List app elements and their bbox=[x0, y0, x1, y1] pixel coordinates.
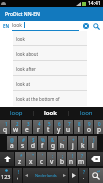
button[interactable]: d bbox=[28, 136, 37, 150]
button[interactable]: . bbox=[79, 168, 88, 183]
button[interactable]: loon bbox=[69, 107, 103, 119]
button[interactable]: look about bbox=[13, 46, 87, 61]
button[interactable]: look after bbox=[13, 61, 87, 76]
button[interactable]: n bbox=[67, 152, 76, 166]
button[interactable]: i bbox=[74, 120, 83, 134]
button[interactable]: Next bbox=[69, 168, 78, 183]
staticText: look at the bottom of bbox=[16, 96, 60, 102]
staticText: ) bbox=[93, 137, 95, 143]
staticText: 9 bbox=[88, 121, 91, 127]
staticText: f bbox=[41, 141, 44, 150]
staticText: q bbox=[3, 125, 7, 134]
button[interactable]: e bbox=[22, 120, 32, 134]
button[interactable]: look bbox=[13, 31, 87, 46]
button[interactable]: w bbox=[11, 120, 21, 134]
button[interactable]: o bbox=[84, 120, 93, 134]
other: Search bbox=[89, 168, 103, 183]
button[interactable]: Nederlands bbox=[23, 168, 68, 183]
button[interactable]: c bbox=[37, 152, 46, 166]
staticText: & bbox=[51, 137, 55, 143]
staticText: look about bbox=[16, 51, 39, 57]
staticText: a bbox=[10, 141, 14, 150]
staticText: z bbox=[18, 157, 22, 166]
staticText: ! bbox=[18, 169, 20, 175]
staticText: 2 bbox=[16, 121, 19, 127]
staticText: n bbox=[69, 157, 74, 166]
staticText: 6 bbox=[58, 121, 61, 127]
staticText: 5 bbox=[48, 121, 51, 127]
other: Shift bbox=[0, 152, 14, 166]
staticText: % bbox=[41, 137, 45, 143]
staticText: : bbox=[52, 153, 54, 159]
button[interactable]: k bbox=[78, 136, 87, 150]
staticText: k bbox=[81, 141, 85, 150]
button[interactable]: look at the bottom of bbox=[13, 91, 87, 106]
button[interactable]: Clear bbox=[81, 21, 91, 31]
button[interactable]: Shift bbox=[0, 152, 14, 166]
staticText: v bbox=[50, 157, 54, 166]
button[interactable]: v bbox=[47, 152, 56, 166]
button[interactable]: t bbox=[44, 120, 53, 134]
button[interactable]: look bbox=[34, 107, 68, 119]
staticText: w bbox=[13, 125, 19, 134]
button[interactable]: r bbox=[33, 120, 43, 134]
staticText: $ bbox=[32, 137, 35, 143]
button[interactable]: ProDict NN-EN bbox=[0, 7, 103, 21]
button[interactable]: j bbox=[68, 136, 77, 150]
staticText: look bbox=[12, 22, 23, 29]
staticText: look bbox=[16, 36, 25, 42]
staticText: look after bbox=[16, 66, 36, 72]
staticText: ; bbox=[62, 153, 64, 159]
staticText: 0 bbox=[98, 121, 101, 127]
staticText: 123 bbox=[1, 173, 11, 180]
button[interactable]: Backspace bbox=[87, 152, 103, 166]
staticText: j bbox=[72, 141, 74, 150]
button[interactable]: p bbox=[94, 120, 103, 134]
staticText: 8 bbox=[78, 121, 81, 127]
staticText: u bbox=[66, 125, 71, 134]
staticText: r bbox=[37, 125, 40, 134]
button[interactable]: x bbox=[26, 152, 36, 166]
button[interactable]: h bbox=[58, 136, 67, 150]
staticText: ( bbox=[83, 137, 85, 143]
button[interactable]: l bbox=[88, 136, 97, 150]
staticText: @ bbox=[10, 137, 15, 143]
staticText: loon bbox=[80, 109, 93, 117]
staticText: ProDict NN-EN bbox=[5, 11, 40, 18]
staticText: l bbox=[92, 141, 94, 150]
staticText: EN bbox=[3, 23, 10, 29]
button[interactable]: Search bbox=[91, 21, 102, 31]
button[interactable]: q bbox=[0, 120, 10, 134]
staticText: b bbox=[60, 157, 64, 166]
staticText: g bbox=[51, 141, 55, 150]
staticText: * bbox=[20, 153, 23, 159]
button[interactable]: f bbox=[38, 136, 47, 150]
staticText: ! bbox=[72, 153, 74, 159]
button[interactable]: y bbox=[54, 120, 63, 134]
button[interactable]: , bbox=[13, 168, 22, 183]
button[interactable]: b bbox=[57, 152, 66, 166]
staticText: x bbox=[29, 157, 33, 166]
staticText: i bbox=[78, 125, 80, 134]
staticText: m bbox=[78, 157, 85, 166]
staticText: - bbox=[63, 137, 65, 143]
staticText: 1 bbox=[5, 121, 8, 127]
button[interactable]: u bbox=[64, 120, 73, 134]
staticText: Nederlands bbox=[35, 173, 57, 178]
staticText: . bbox=[83, 174, 85, 181]
button[interactable]: z bbox=[15, 152, 25, 166]
button[interactable]: 123 bbox=[0, 168, 12, 183]
button[interactable]: look at bbox=[13, 76, 87, 91]
staticText: o bbox=[87, 125, 91, 134]
button[interactable]: s bbox=[18, 136, 27, 150]
button[interactable]: loop bbox=[0, 107, 33, 119]
staticText: 14:41 bbox=[88, 0, 101, 7]
button[interactable]: a bbox=[7, 136, 17, 150]
staticText: ? bbox=[81, 153, 84, 159]
staticText: # bbox=[22, 137, 25, 143]
button[interactable]: g bbox=[48, 136, 57, 150]
button[interactable]: m bbox=[77, 152, 86, 166]
button[interactable]: Search bbox=[89, 168, 103, 183]
staticText: p bbox=[97, 125, 101, 134]
staticText: 3 bbox=[27, 121, 30, 127]
